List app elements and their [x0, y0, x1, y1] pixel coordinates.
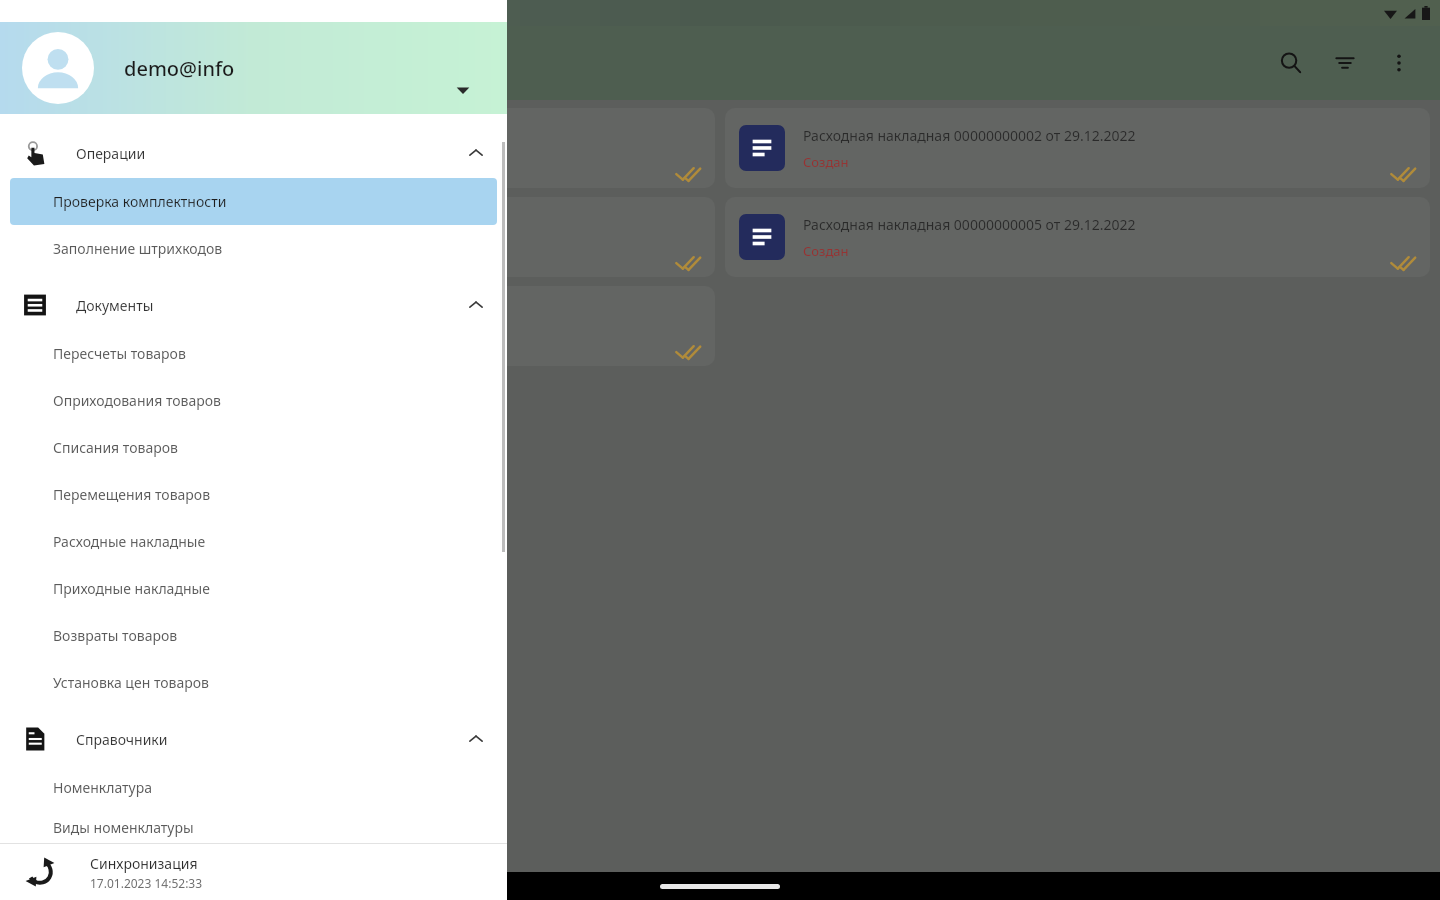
staticText: Расходные накладные — [53, 532, 206, 551]
staticText: Расходная накладная 00000000002 от 29.12… — [803, 126, 1136, 145]
staticText: Операции — [76, 144, 146, 163]
button[interactable]: Справочники — [0, 714, 507, 764]
button[interactable]: Заполнение штрихкодов — [10, 225, 497, 272]
button[interactable]: Возвраты товаров — [10, 612, 497, 659]
staticText: Номенклатура — [53, 778, 153, 797]
staticText: Проверка комплектности — [53, 192, 227, 211]
staticText: Расходная накладная 00000000002 от 29.12… — [88, 215, 421, 234]
button[interactable]: Синхронизация — [0, 844, 507, 900]
button[interactable]: Пересчеты товаров — [10, 330, 497, 377]
button[interactable]: Расходная накладная 00000000002 от 29.12… — [725, 108, 1430, 188]
staticText: Возвраты товаров — [53, 626, 178, 645]
staticText: Приходные накладные — [53, 579, 210, 598]
staticText: Расходная накладная 00000000005 от 29.12… — [803, 215, 1136, 234]
button[interactable]: Списания товаров — [10, 424, 497, 471]
button[interactable]: Filter — [1318, 36, 1372, 90]
staticText: Пересчеты товаров — [53, 344, 186, 363]
button[interactable]: demo@info — [0, 22, 507, 114]
staticText: Документы — [76, 296, 154, 315]
staticText: demo@info — [124, 55, 235, 82]
button[interactable]: Expand account — [451, 78, 475, 102]
button[interactable]: Документы — [0, 280, 507, 330]
button[interactable]: Установка цен товаров — [10, 659, 497, 706]
button[interactable]: Номенклатура — [10, 764, 497, 811]
staticText: Расходная накладная 00000000003 от 29.12… — [88, 304, 421, 323]
button[interactable]: Search — [1264, 36, 1318, 90]
button[interactable]: Приходные накладные — [10, 565, 497, 612]
button[interactable]: Проверка комплектности — [10, 178, 497, 225]
button[interactable]: Расходная накладная 00000000005 от 29.12… — [725, 197, 1430, 277]
button[interactable]: Расходная накладная 00000000002 от 29.12… — [10, 197, 715, 277]
button[interactable]: Расходная накладная 00000000002 от 29.12… — [10, 108, 715, 188]
button[interactable]: Операции — [0, 128, 507, 178]
staticText: Создан — [803, 153, 849, 171]
staticText: Создан — [88, 153, 134, 171]
staticText: Заполнение штрихкодов — [53, 239, 223, 258]
button[interactable]: Расходная накладная 00000000003 от 29.12… — [10, 286, 715, 366]
button[interactable]: More options — [1372, 36, 1426, 90]
staticText: Установка цен товаров — [53, 673, 209, 692]
staticText: Создан — [803, 242, 849, 260]
button[interactable]: Виды номенклатуры — [10, 811, 497, 843]
button[interactable]: Расходные накладные — [10, 518, 497, 565]
staticText: Создан — [88, 242, 134, 260]
staticText: 17.01.2023 14:52:33 — [90, 875, 203, 891]
staticText: Справочники — [76, 730, 168, 749]
button[interactable]: Перемещения товаров — [10, 471, 497, 518]
staticText: Синхронизация — [90, 854, 198, 873]
staticText: Перемещения товаров — [53, 485, 211, 504]
staticText: Списания товаров — [53, 438, 178, 457]
staticText: Виды номенклатуры — [53, 818, 194, 837]
button[interactable]: Оприходования товаров — [10, 377, 497, 424]
staticText: Оприходования товаров — [53, 391, 221, 410]
